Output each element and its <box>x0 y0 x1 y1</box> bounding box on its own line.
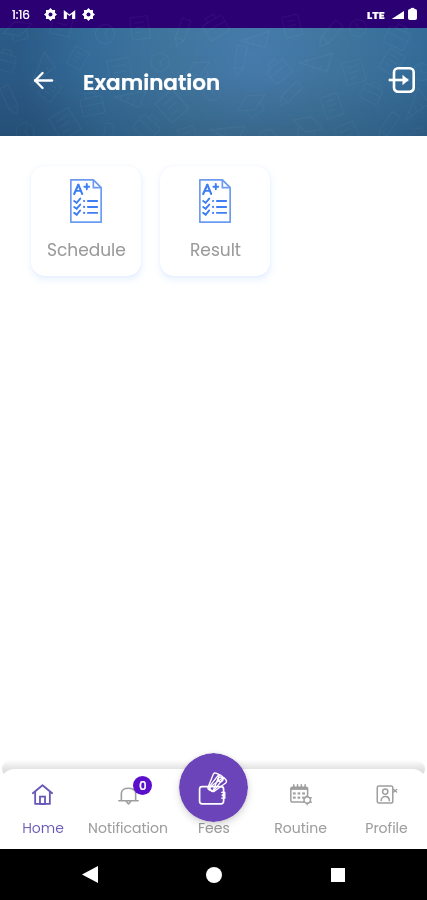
button[interactable]: Result <box>160 166 270 276</box>
button[interactable]: Schedule <box>31 166 141 276</box>
staticText: Schedule <box>47 238 126 262</box>
staticText: Home <box>22 818 64 838</box>
button[interactable]: Profile <box>343 769 425 849</box>
staticText: 1:16 <box>12 6 30 23</box>
staticText: Examination <box>83 67 221 97</box>
staticText: Routine <box>274 818 327 838</box>
button[interactable]: Fees <box>179 753 248 822</box>
staticText: LTE <box>367 7 385 22</box>
button[interactable]: 0 <box>85 769 171 849</box>
button[interactable]: Routine <box>257 769 343 849</box>
staticText: Result <box>190 238 241 262</box>
staticText: 0 <box>139 777 147 794</box>
button[interactable]: Logout <box>386 64 418 96</box>
staticText: Fees <box>198 818 230 838</box>
staticText: Profile <box>365 818 408 838</box>
staticText: Notification <box>88 818 168 838</box>
button[interactable]: Back <box>26 63 60 97</box>
button[interactable]: Home <box>2 769 85 849</box>
